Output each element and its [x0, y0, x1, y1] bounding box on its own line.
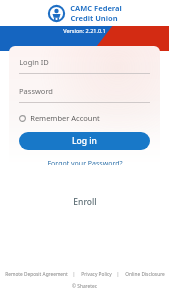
button[interactable]: Log in	[19, 132, 150, 150]
staticText: CAMC Federal	[70, 3, 122, 13]
button[interactable]: Forgot your Password?	[47, 159, 123, 165]
staticText: Remember Account	[30, 113, 100, 123]
button[interactable]: Login ID	[19, 57, 150, 74]
staticText: |	[116, 270, 120, 278]
staticText: Remote Deposit Agreement	[5, 271, 68, 278]
staticText: Version: 2.21.0.1	[63, 27, 106, 34]
staticText: Credit Union	[70, 13, 118, 23]
staticText: Password	[19, 86, 53, 96]
staticText: Login ID	[19, 57, 49, 67]
button[interactable]: Enroll	[69, 192, 101, 212]
button[interactable]: Remote Deposit Agreement	[5, 271, 68, 278]
button[interactable]: Remember Account	[19, 112, 100, 124]
staticText: Log in	[72, 135, 97, 147]
staticText: Online Disclosure	[125, 271, 165, 278]
staticText: © Sharetec	[72, 283, 97, 290]
staticText: Forgot your Password?	[47, 159, 123, 165]
staticText: Enroll	[73, 196, 97, 208]
button[interactable]: Privacy Policy	[81, 271, 112, 278]
staticText: Privacy Policy	[81, 271, 112, 278]
staticText: |	[72, 270, 76, 278]
button[interactable]: Password	[19, 86, 150, 103]
button[interactable]: Online Disclosure	[125, 271, 165, 278]
